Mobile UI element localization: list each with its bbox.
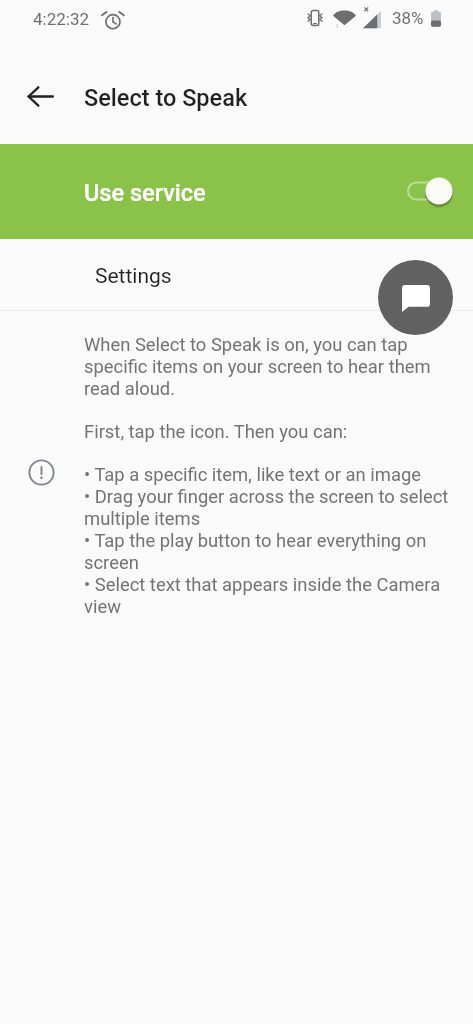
- staticText: Select to Speak: [84, 84, 248, 112]
- button[interactable]: Select to Speak: [378, 260, 453, 335]
- button[interactable]: Back: [14, 70, 66, 122]
- staticText: 38%: [392, 8, 424, 28]
- staticText: First, tap the icon. Then you can:: [84, 421, 348, 443]
- button[interactable]: Use service toggle: [401, 173, 457, 209]
- button[interactable]: Settings: [0, 239, 473, 310]
- staticText: Settings: [95, 264, 172, 289]
- staticText: • Tap a specific item, like text or an i…: [84, 464, 458, 618]
- staticText: When Select to Speak is on, you can tap …: [84, 334, 458, 400]
- button[interactable]: Use service: [0, 144, 473, 239]
- staticText: 4:22:32: [33, 9, 90, 29]
- staticText: Use service: [84, 179, 206, 207]
